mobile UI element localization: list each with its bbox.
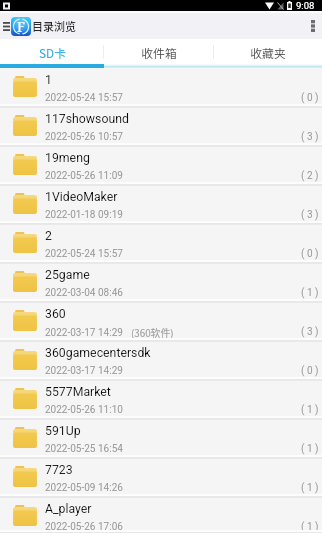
button[interactable]: SD卡	[0, 39, 104, 64]
staticText: ( 1 )	[301, 443, 319, 455]
staticText: 2022-01-18 09:19	[45, 209, 123, 221]
staticText: 2022-03-17 14:29	[45, 327, 123, 339]
staticText: 19meng	[45, 151, 90, 165]
staticText: ( 0 )	[301, 248, 319, 260]
staticText: 360gamecentersdk	[45, 346, 151, 360]
staticText: 2022-05-25 16:54	[45, 443, 123, 455]
staticText: ( 2 )	[301, 170, 319, 182]
button[interactable]: 收件箱	[104, 39, 214, 64]
staticText: 360	[45, 307, 66, 321]
staticText: 7723	[45, 463, 73, 477]
staticText: 2	[45, 229, 52, 243]
staticText: 117showsound	[45, 112, 129, 126]
staticText: ( 3 )	[301, 209, 319, 221]
button[interactable]: 2	[0, 224, 322, 263]
staticText: ( 0 )	[301, 365, 319, 377]
staticText: 2022-05-09 14:26	[45, 482, 123, 494]
staticText: 2022-05-26 11:10	[45, 404, 123, 416]
staticText: ( 1 )	[301, 482, 319, 494]
button[interactable]: More options	[304, 13, 322, 39]
button[interactable]: 1VideoMaker	[0, 185, 322, 224]
staticText: 2022-03-17 14:29	[45, 365, 123, 377]
staticText: 2022-05-26 10:57	[45, 131, 123, 143]
staticText: 2022-05-26 11:09	[45, 170, 123, 182]
button[interactable]: 1	[0, 68, 322, 107]
staticText: SD卡	[39, 44, 66, 61]
staticText: 收藏夹	[250, 44, 286, 61]
button[interactable]: Menu	[2, 13, 11, 39]
staticText: F	[17, 18, 25, 36]
staticText: ( 1 )	[301, 287, 319, 299]
button[interactable]: 收藏夹	[214, 39, 322, 64]
button[interactable]: 591Up	[0, 419, 322, 458]
staticText: 1	[45, 73, 52, 87]
staticText: 9:08	[296, 0, 315, 11]
staticText: ( 1 )	[301, 404, 319, 416]
staticText: 2022-05-24 15:57	[45, 92, 123, 104]
staticText: ( 3 )	[301, 326, 319, 338]
button[interactable]: 360gamecentersdk	[0, 341, 322, 380]
staticText: 591Up	[45, 424, 81, 438]
staticText: 2022-05-24 15:57	[45, 248, 123, 260]
button[interactable]: 19meng	[0, 146, 322, 185]
button[interactable]: 25game	[0, 263, 322, 302]
staticText: 1VideoMaker	[45, 190, 118, 204]
staticText: 收件箱	[141, 44, 177, 61]
staticText: ( 3 )	[301, 131, 319, 143]
button[interactable]: 117showsound	[0, 107, 322, 146]
staticText: A_player	[45, 502, 92, 516]
staticText: 25game	[45, 268, 90, 282]
staticText: ( 0 )	[301, 92, 319, 104]
staticText: 2022-03-04 08:46	[45, 287, 123, 299]
staticText: 2022-05-26 17:06	[45, 521, 123, 533]
staticText: ( 1 )	[301, 521, 319, 533]
staticText: 5577Market	[45, 385, 111, 399]
button[interactable]: 360	[0, 302, 322, 341]
staticText: (360软件)	[131, 326, 174, 340]
button[interactable]: 5577Market	[0, 380, 322, 419]
button[interactable]: 7723	[0, 458, 322, 497]
staticText: 目录浏览	[32, 18, 76, 34]
button[interactable]: A_player	[0, 497, 322, 533]
